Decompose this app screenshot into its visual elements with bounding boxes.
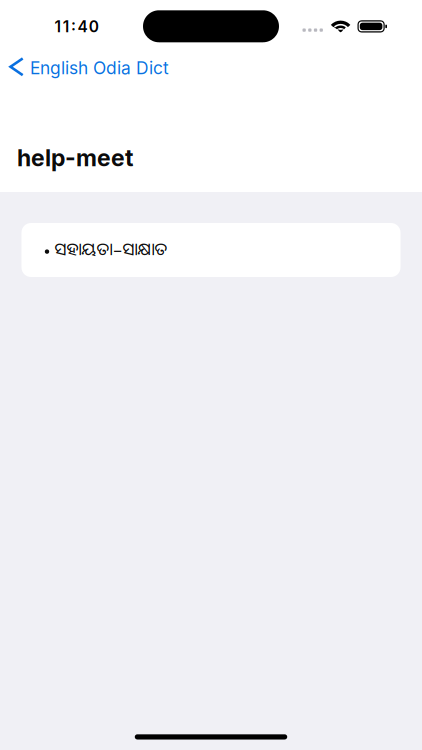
button[interactable]: English Odia Dict — [0, 56, 422, 80]
staticText: 11:40 — [54, 17, 99, 36]
staticText: help-meet — [17, 144, 133, 172]
button[interactable]: ସହାୟତା-ସାକ୍ଷାତ — [21, 223, 400, 277]
staticText: English Odia Dict — [30, 57, 169, 78]
staticText: ସହାୟତା-ସାକ୍ଷାତ — [54, 238, 167, 262]
